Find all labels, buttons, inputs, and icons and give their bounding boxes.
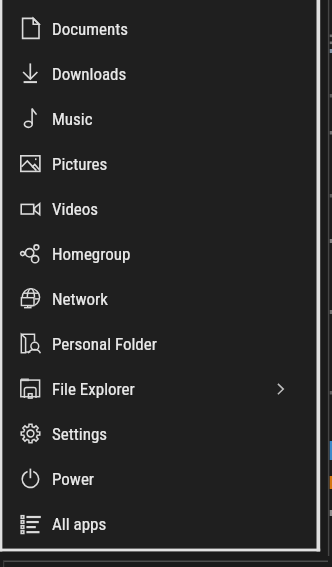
button[interactable]: Pictures xyxy=(0,141,316,186)
staticText: Network xyxy=(52,289,108,309)
staticText: Videos xyxy=(52,199,99,219)
staticText: Music xyxy=(52,109,93,129)
staticText: Homegroup xyxy=(52,244,131,264)
button[interactable]: Settings xyxy=(0,411,316,456)
staticText: Pictures xyxy=(52,154,108,174)
button[interactable]: Homegroup xyxy=(0,231,316,276)
staticText: Settings xyxy=(52,424,108,444)
button[interactable]: Power xyxy=(0,456,316,501)
staticText: Power xyxy=(52,469,95,489)
button[interactable]: Documents xyxy=(0,6,316,51)
staticText: All apps xyxy=(52,514,107,534)
staticText: Documents xyxy=(52,19,129,39)
button[interactable]: Downloads xyxy=(0,51,316,96)
staticText: Personal Folder xyxy=(52,334,157,354)
staticText: File Explorer xyxy=(52,379,135,399)
staticText: Downloads xyxy=(52,64,127,84)
button[interactable]: Personal Folder xyxy=(0,321,316,366)
button[interactable]: Music xyxy=(0,96,316,141)
button[interactable]: Videos xyxy=(0,186,316,231)
button[interactable]: File Explorer xyxy=(0,366,316,411)
button[interactable]: Network xyxy=(0,276,316,321)
button[interactable]: All apps xyxy=(0,501,316,546)
